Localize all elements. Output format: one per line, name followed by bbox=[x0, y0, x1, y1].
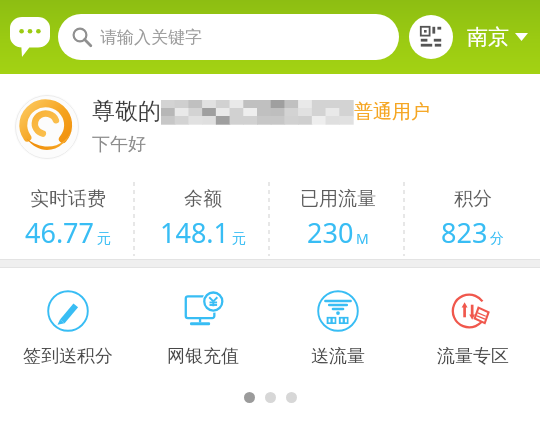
staticText: 网银充值 bbox=[167, 345, 239, 368]
staticText: 尊敬的 bbox=[92, 97, 161, 126]
staticText: 南京 bbox=[467, 24, 509, 50]
button[interactable]: 已用流量 bbox=[270, 179, 405, 259]
staticText: 823 bbox=[441, 214, 488, 251]
button[interactable]: 余额 bbox=[135, 179, 270, 259]
staticText: 148.1 bbox=[160, 214, 230, 251]
staticText: 230 bbox=[307, 214, 354, 251]
staticText: 送流量 bbox=[311, 345, 365, 368]
button[interactable]: Messages bbox=[6, 13, 54, 61]
staticText: 已用流量 bbox=[300, 187, 376, 211]
button[interactable]: 尊敬的 bbox=[0, 74, 540, 179]
staticText: 元 bbox=[232, 230, 246, 248]
button[interactable]: 请输入关键字 bbox=[58, 14, 399, 60]
staticText: 实时话费 bbox=[30, 187, 106, 211]
button[interactable]: 签到送积分 bbox=[0, 288, 135, 370]
button[interactable]: 流量专区 bbox=[405, 288, 540, 370]
button[interactable]: 实时话费 bbox=[0, 179, 135, 259]
button[interactable]: 南京 bbox=[463, 16, 532, 58]
staticText: 分 bbox=[490, 230, 504, 248]
staticText: 签到送积分 bbox=[23, 345, 113, 368]
staticText: 元 bbox=[97, 230, 111, 248]
staticText: M bbox=[356, 229, 369, 248]
staticText: 积分 bbox=[454, 187, 492, 211]
staticText: 流量专区 bbox=[437, 345, 509, 368]
button[interactable]: 送流量 bbox=[270, 288, 405, 370]
staticText: 普通用户 bbox=[354, 100, 430, 124]
staticText: 余额 bbox=[184, 187, 222, 211]
button[interactable]: 积分 bbox=[405, 179, 540, 259]
staticText: 下午好 bbox=[92, 133, 146, 156]
button[interactable]: 网银充值 bbox=[135, 288, 270, 370]
button[interactable]: Scan QR code bbox=[409, 15, 453, 59]
staticText: 请输入关键字 bbox=[100, 27, 202, 48]
staticText: 46.77 bbox=[25, 214, 95, 251]
